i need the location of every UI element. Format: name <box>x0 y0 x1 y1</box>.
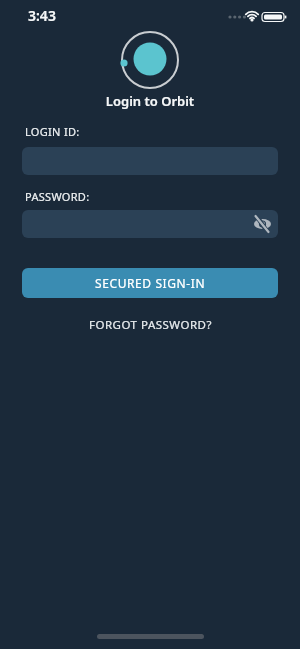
staticText: LOGIN ID: <box>25 124 80 139</box>
staticText: PASSWORD: <box>25 189 90 204</box>
button[interactable]: SECURED SIGN-IN <box>22 268 278 298</box>
button[interactable]: FORGOT PASSWORD? <box>65 314 235 336</box>
staticText: FORGOT PASSWORD? <box>89 317 212 333</box>
button[interactable] <box>250 210 278 238</box>
staticText: SECURED SIGN-IN <box>95 275 206 291</box>
staticText: 3:43 <box>28 6 56 25</box>
staticText: Login to Orbit <box>0 92 300 110</box>
button[interactable] <box>22 210 278 238</box>
